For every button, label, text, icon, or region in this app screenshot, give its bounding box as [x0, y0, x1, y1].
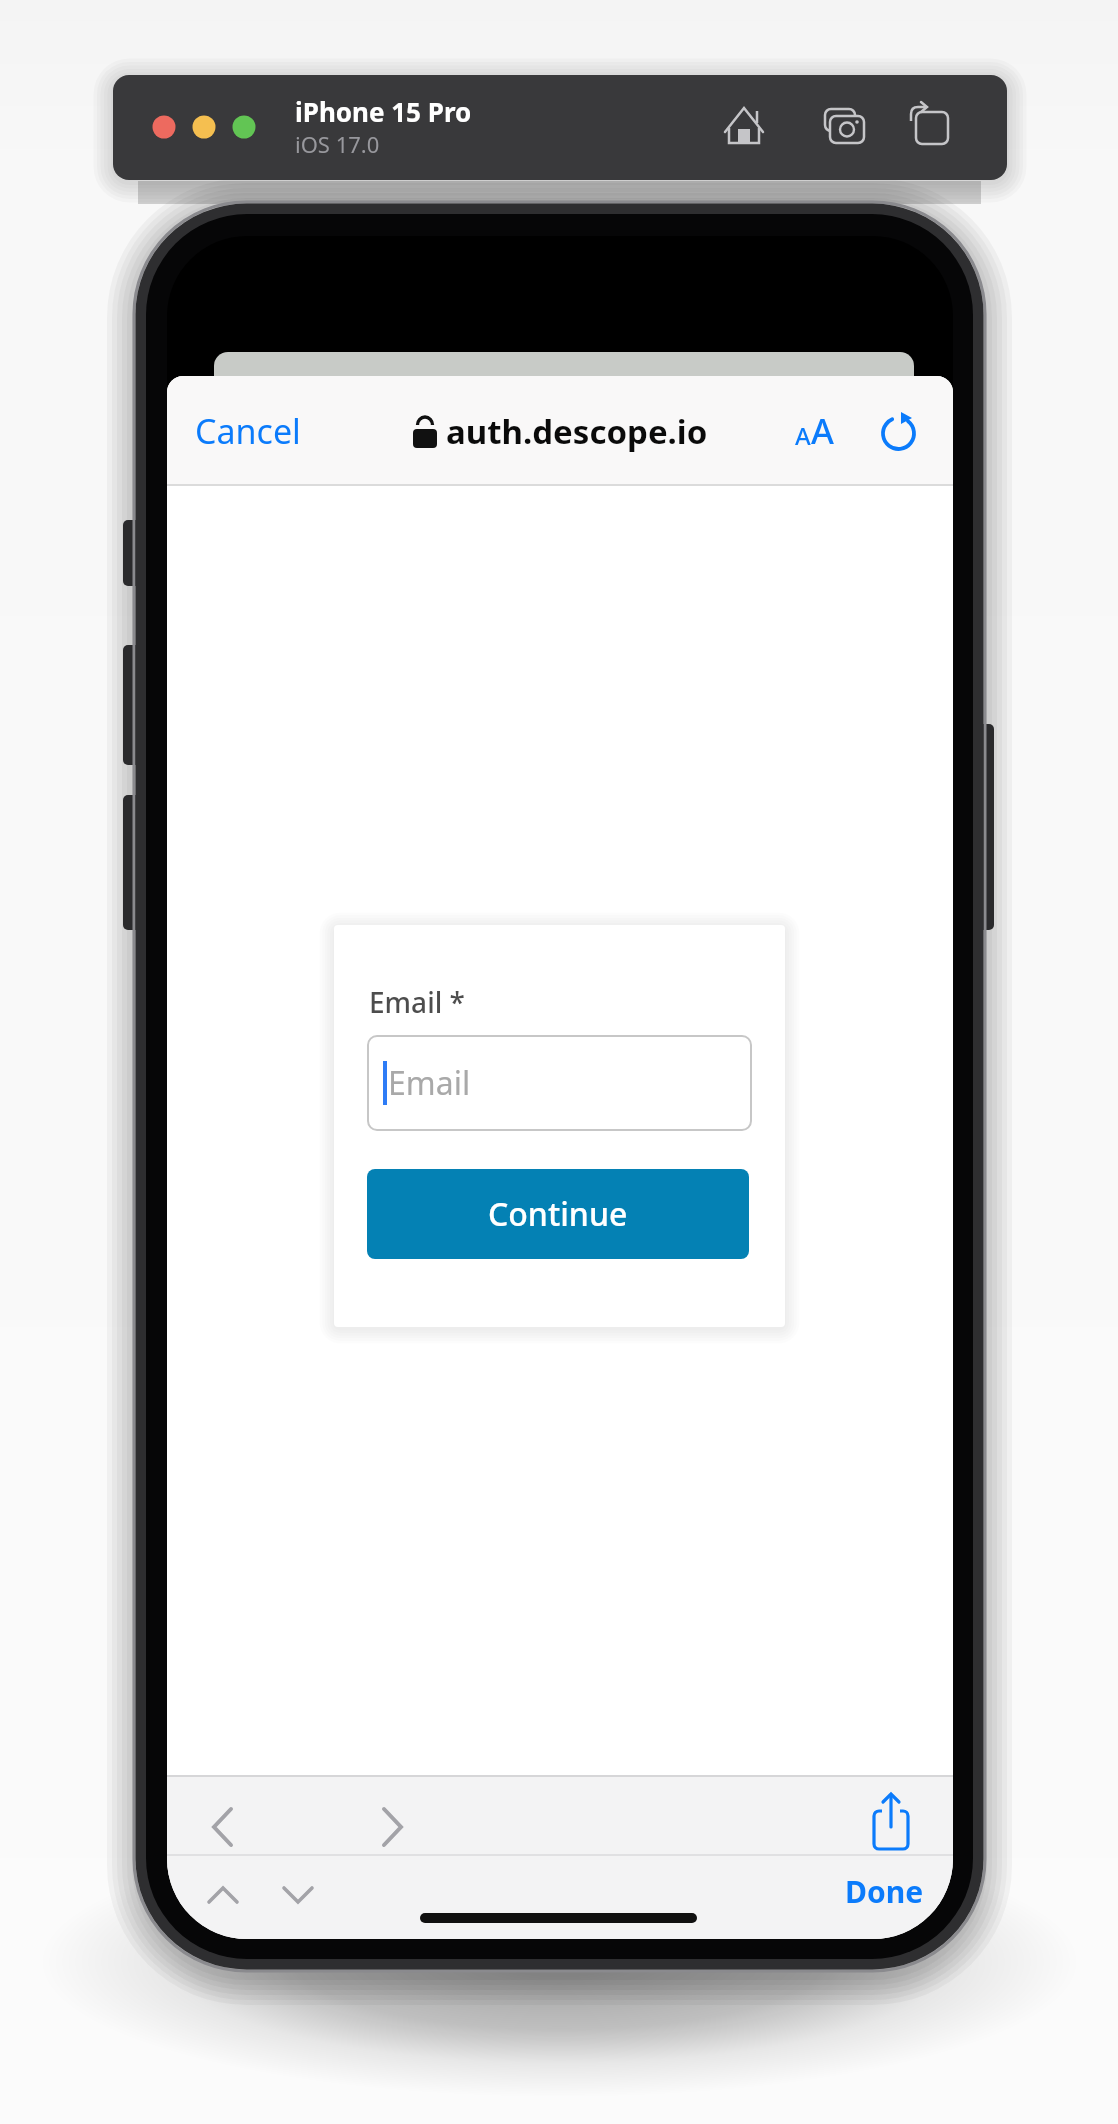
staticText: Done: [845, 1871, 924, 1912]
button[interactable]: A: [795, 376, 834, 486]
staticText: auth.descope.io: [446, 409, 708, 454]
staticText: Email *: [369, 983, 465, 1021]
staticText: A: [811, 407, 834, 455]
button[interactable]: Email: [367, 1035, 752, 1131]
button[interactable]: [879, 412, 919, 452]
staticText: Continue: [488, 1192, 628, 1236]
staticText: A: [795, 419, 811, 452]
button[interactable]: Continue: [367, 1169, 749, 1259]
button[interactable]: Done: [831, 1867, 938, 1916]
staticText: Cancel: [195, 408, 301, 454]
button[interactable]: Cancel: [195, 376, 301, 486]
staticText: Email: [388, 1061, 471, 1105]
staticText: iPhone 15 Pro: [295, 94, 472, 129]
staticText: iOS 17.0: [295, 129, 380, 159]
